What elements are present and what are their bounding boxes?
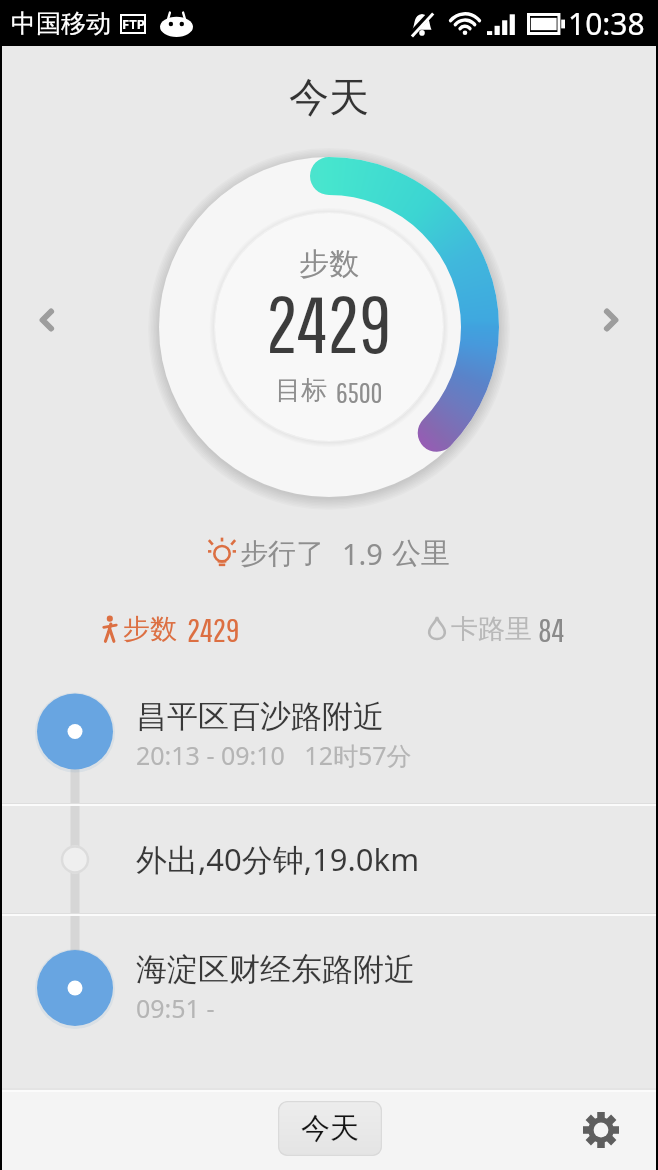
button[interactable]: 步数 [102, 610, 240, 648]
button[interactable]: 卡路里 [427, 610, 565, 648]
staticText: 步数 [123, 612, 177, 646]
button[interactable]: Next day [587, 296, 635, 344]
staticText: 昌平区百沙路附近 [136, 697, 384, 736]
staticText: 2429 [266, 278, 392, 364]
button[interactable]: 步行了 [208, 532, 450, 574]
staticText: 外出,40分钟,19.0km [136, 838, 420, 880]
staticText: 目标 [275, 374, 327, 407]
staticText: 中国移动 [11, 8, 111, 39]
staticText: 步行了 [240, 536, 324, 571]
button[interactable]: 外出,40分钟,19.0km [2, 806, 656, 913]
staticText: 步数 [299, 245, 359, 283]
button[interactable]: Settings [577, 1106, 625, 1154]
staticText: 今天 [289, 72, 369, 120]
staticText: 卡路里 [451, 612, 532, 646]
staticText: 1.9 [342, 534, 383, 573]
button[interactable]: 今天 [278, 1101, 382, 1156]
button[interactable]: Previous day [23, 296, 71, 344]
staticText: 20:13 - 09:10 12时57分 [136, 738, 412, 772]
button[interactable]: 昌平区百沙路附近 [2, 660, 656, 803]
button[interactable]: 海淀区财经东路附近 [2, 916, 656, 1060]
staticText: 今天 [301, 1110, 359, 1147]
staticText: 2429 [187, 611, 240, 649]
staticText: 6500 [336, 375, 383, 408]
staticText: 09:51 - [136, 991, 215, 1025]
staticText: FTP [122, 15, 145, 33]
staticText: 海淀区财经东路附近 [136, 950, 415, 989]
staticText: 公里 [392, 535, 450, 572]
staticText: 84 [538, 611, 565, 649]
staticText: 10:38 [568, 3, 645, 44]
